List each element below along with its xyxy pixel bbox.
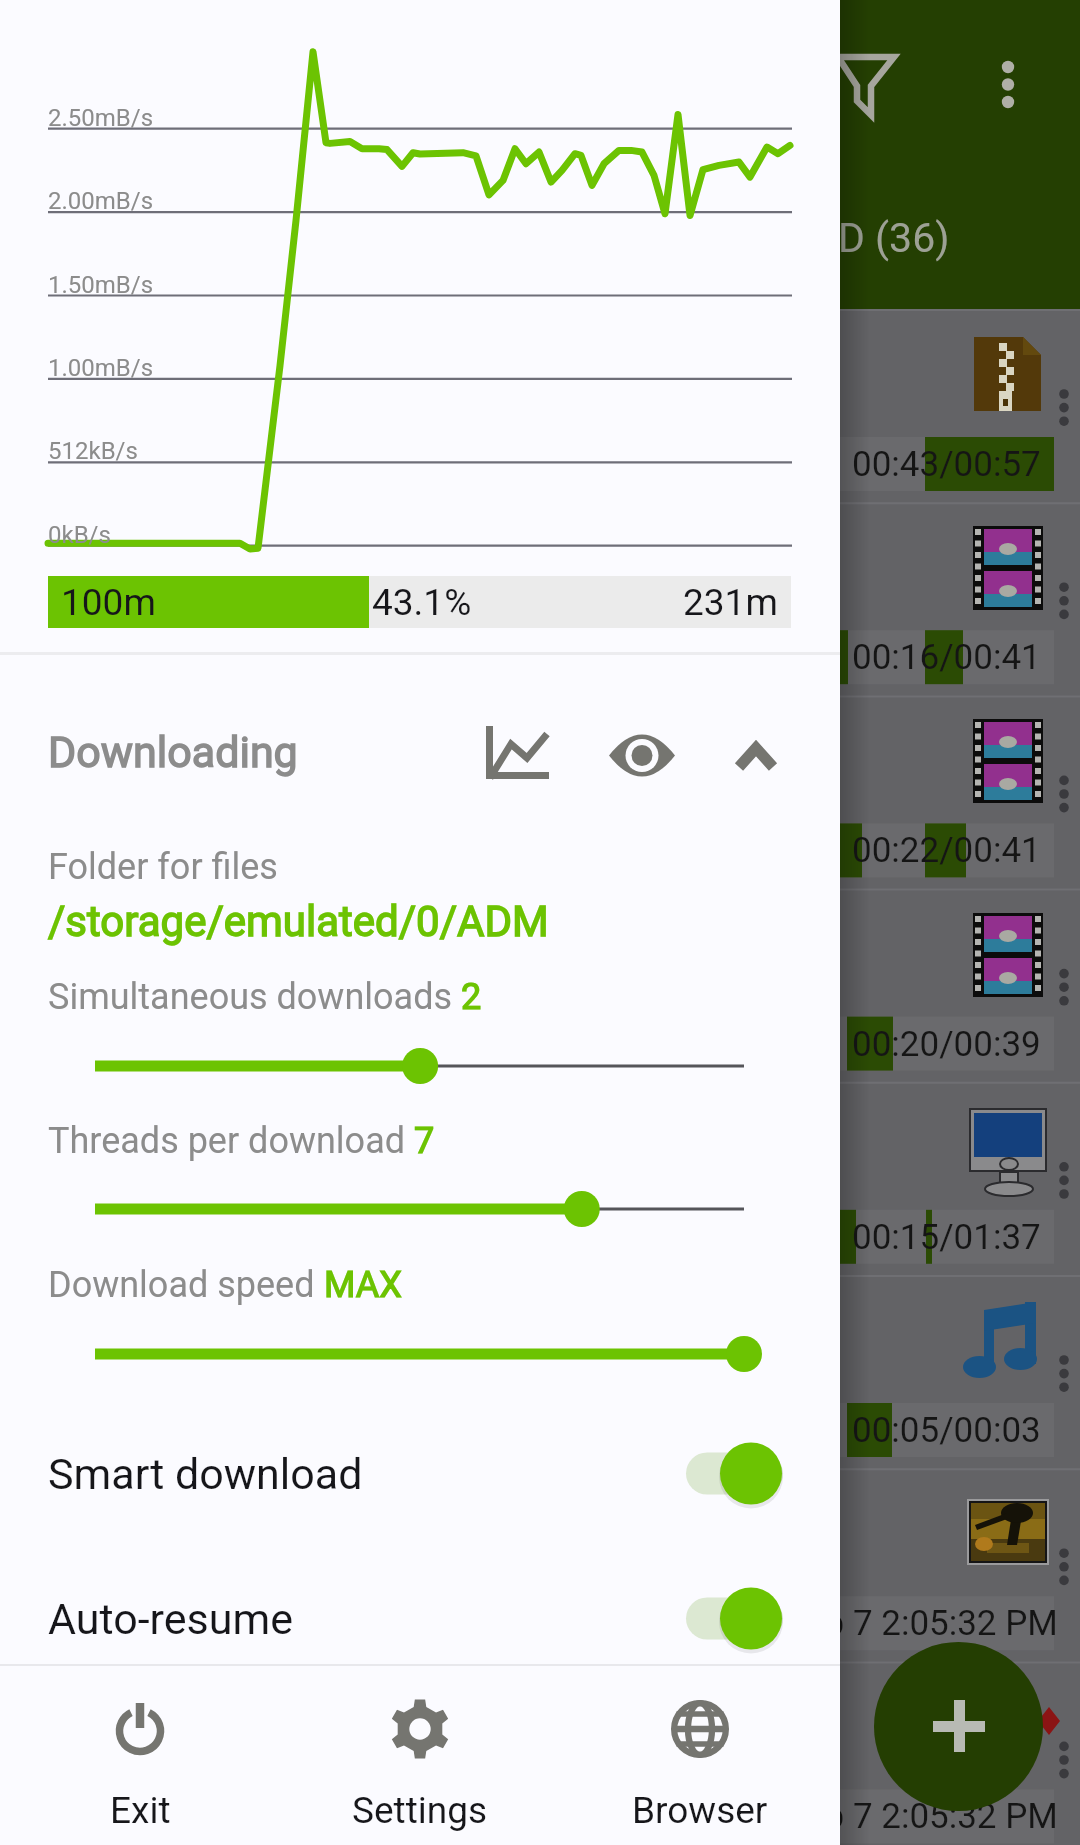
staticText: 1.50mB/s [48,271,154,299]
button[interactable]: Exit [0,1664,280,1845]
staticText: Feb 7 2:05:32 PM [787,1796,1058,1837]
staticText: 00:16/00:41 [852,637,1041,678]
button[interactable]: Threads per download [0,1120,840,1264]
button[interactable]: Speed graph [472,708,560,796]
staticText: D (36) [838,214,950,262]
button[interactable]: Simultaneous downloads [0,976,840,1120]
staticText: Threads per download [48,1120,414,1162]
button[interactable]: Smart download [0,1401,840,1546]
button[interactable]: Download speed [0,1264,840,1408]
staticText: /storage/emulated/0/ADM [48,897,549,946]
staticText: 00:22/00:41 [852,830,1041,871]
button[interactable]: Collapse [712,708,800,796]
staticText: 1.00mB/s [48,354,154,382]
staticText: Downloading [48,727,298,777]
staticText: 00:43/00:57 [852,444,1041,485]
button[interactable]: Add download [874,1642,1044,1812]
button[interactable]: Downloading [0,697,840,807]
staticText: 00:05/00:03 [852,1410,1041,1451]
staticText: Folder for files [48,846,278,888]
staticText: 7 [414,1120,435,1162]
button[interactable]: Show speed graph [598,708,686,796]
staticText: Auto-resume [48,1594,293,1644]
staticText: 231m [683,581,778,624]
staticText: 2 [461,976,482,1018]
staticText: Feb 7 2:05:32 PM [787,1603,1058,1644]
staticText: Exit [110,1789,171,1832]
staticText: 00:20/00:39 [852,1024,1041,1065]
button[interactable]: Settings [280,1664,560,1845]
staticText: Settings [352,1789,488,1832]
staticText: 0kB/s [48,521,111,549]
button[interactable]: Auto-resume [0,1546,840,1691]
staticText: MAX [324,1264,402,1306]
staticText: Browser [632,1789,768,1832]
button[interactable]: Browser [560,1664,840,1845]
staticText: Download speed [48,1264,324,1306]
staticText: 512kB/s [48,437,138,465]
staticText: 100m [61,581,156,624]
staticText: Smart download [48,1449,363,1499]
staticText: 2.50mB/s [48,104,154,132]
staticText: 43.1% [372,581,472,624]
staticText: 00:15/01:37 [852,1217,1041,1258]
staticText: 2.00mB/s [48,187,154,215]
staticText: Simultaneous downloads [48,976,461,1018]
